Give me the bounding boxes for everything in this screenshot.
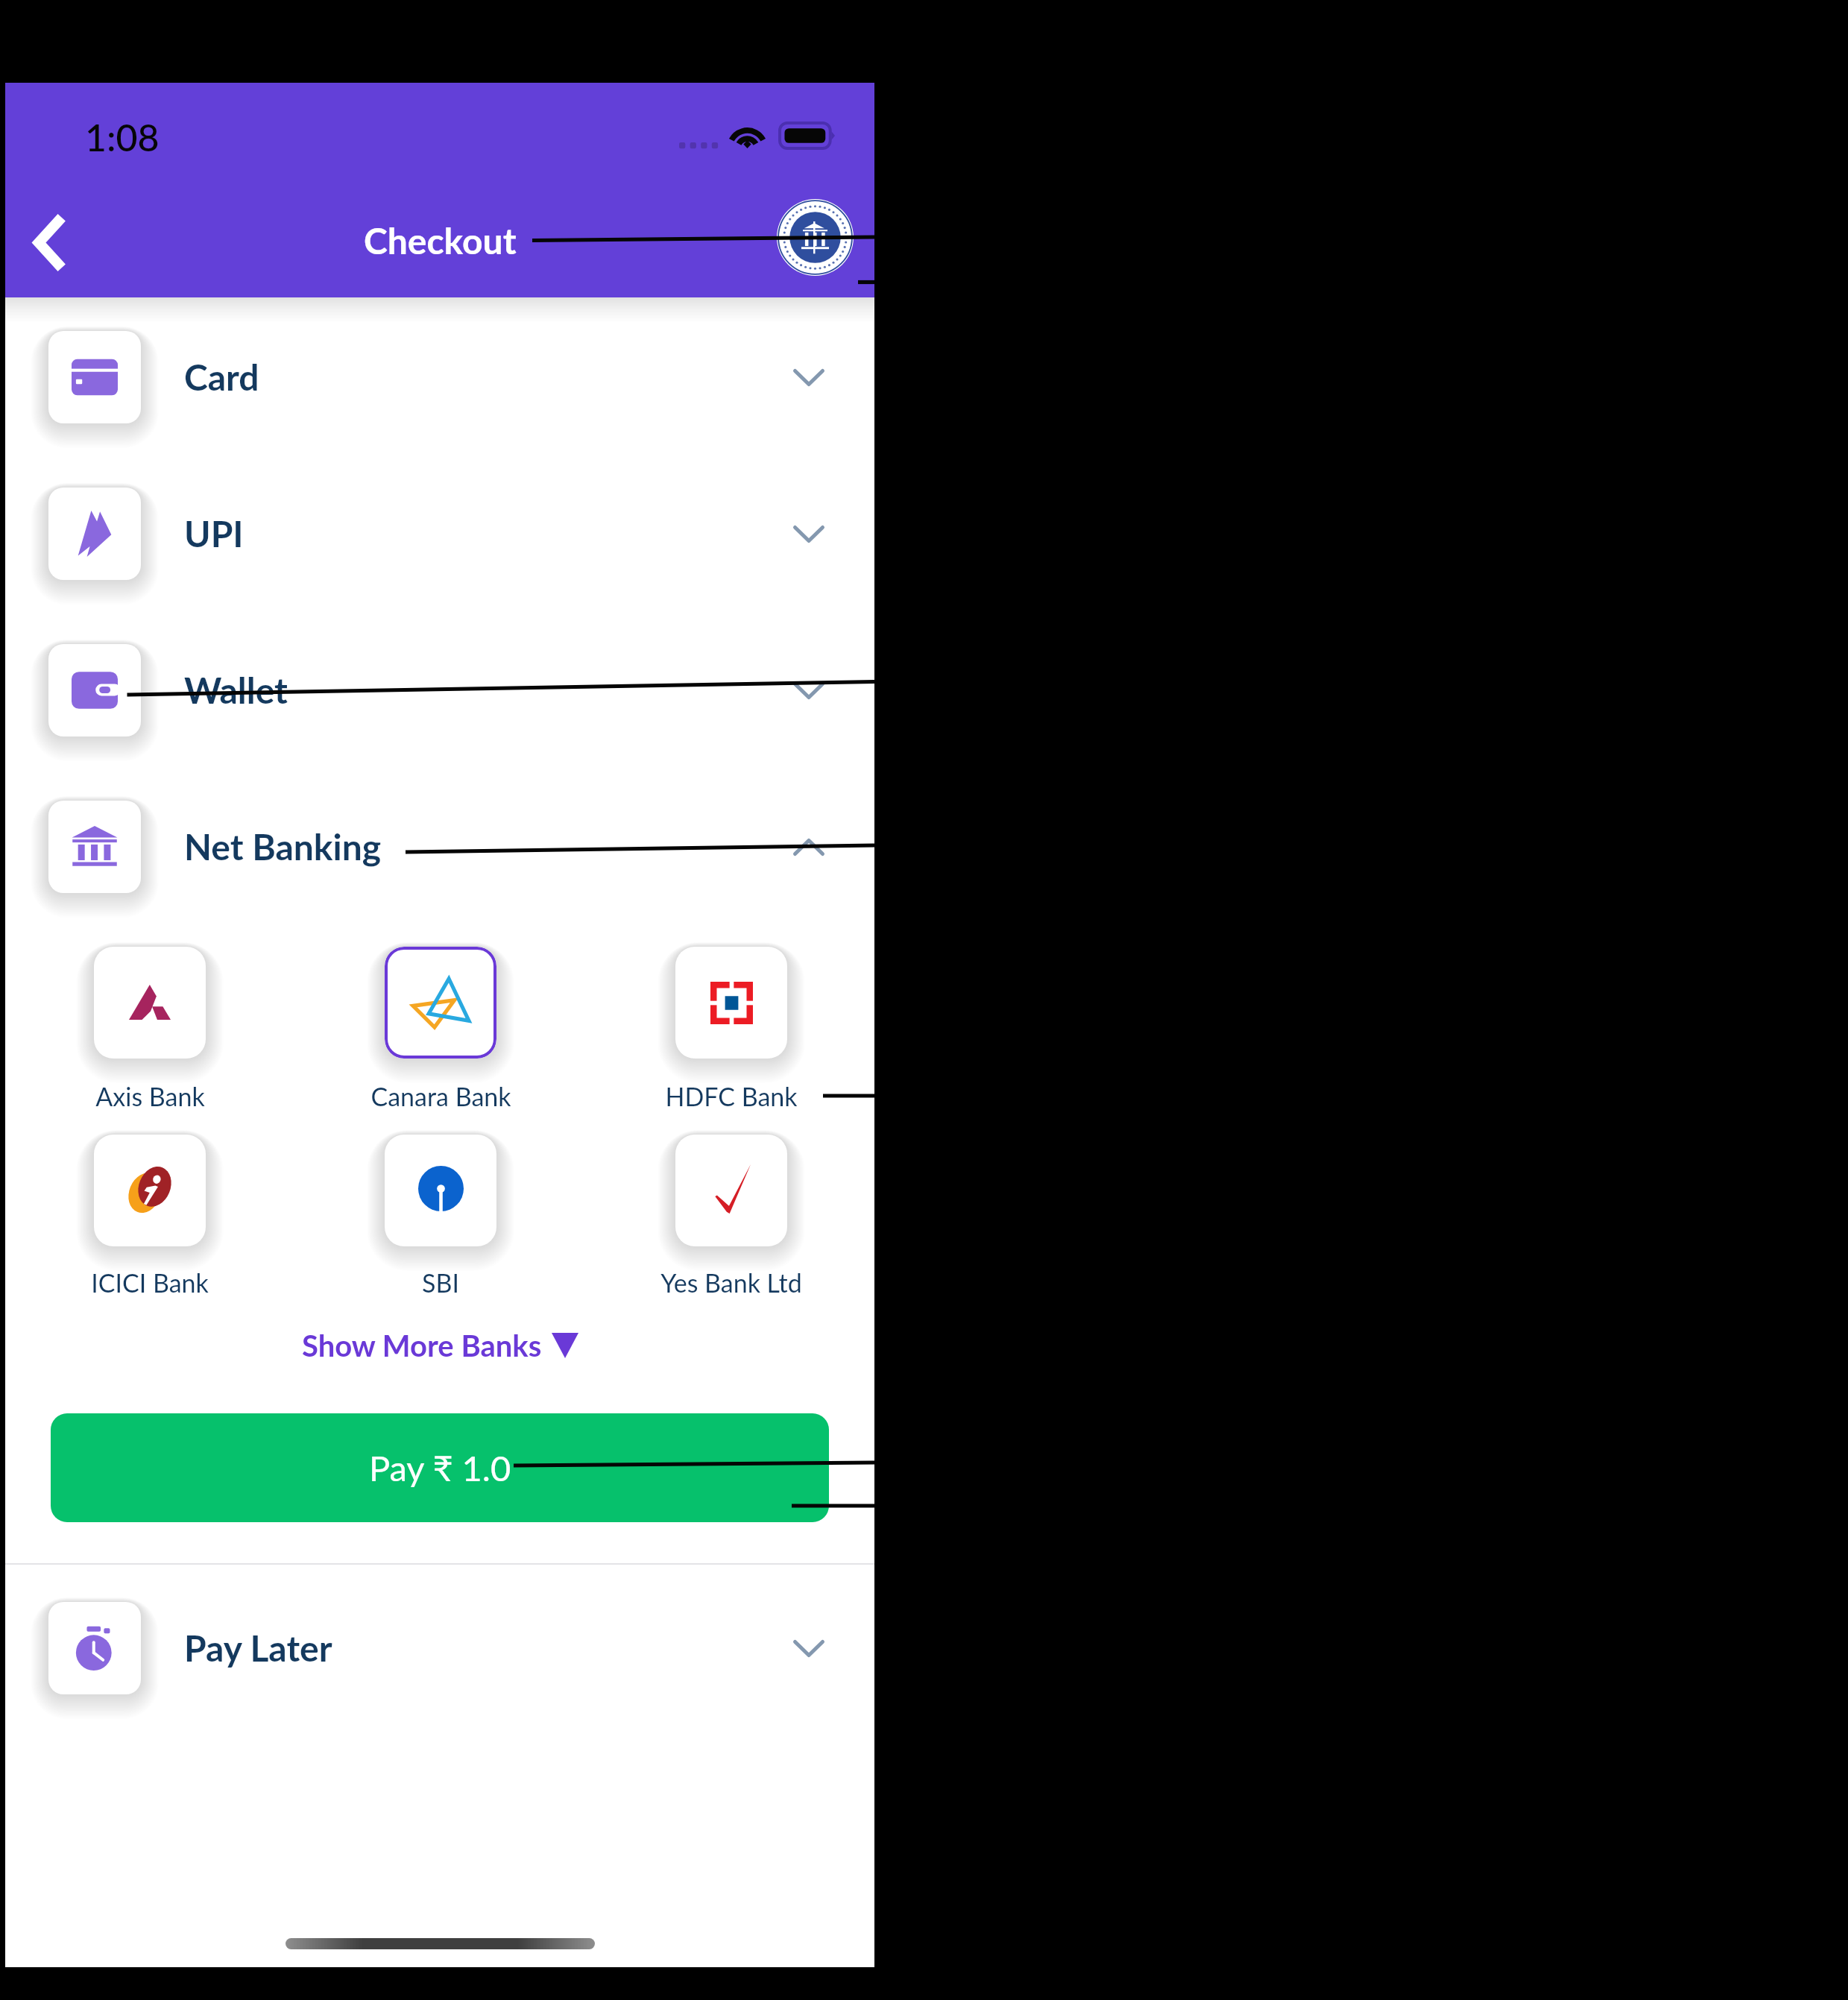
button[interactable]: UPI xyxy=(5,459,874,608)
staticText: Pay Later xyxy=(184,1627,332,1670)
button[interactable]: Back xyxy=(5,174,92,310)
button[interactable]: Pay ₹ 1.0 xyxy=(51,1413,829,1522)
staticText: Card xyxy=(184,356,259,399)
staticText: UPI xyxy=(184,512,244,555)
staticText: Axis Bank xyxy=(95,1081,205,1111)
button[interactable] xyxy=(638,939,824,1126)
staticText: Canara Bank xyxy=(370,1081,511,1111)
button[interactable] xyxy=(57,1127,243,1313)
staticText: Checkout xyxy=(364,219,517,262)
staticText: Wallet xyxy=(184,669,288,712)
button[interactable] xyxy=(638,1127,824,1313)
button[interactable]: Pay Later xyxy=(5,1574,874,1723)
button[interactable]: Wallet xyxy=(5,616,874,765)
staticText: ICICI Bank xyxy=(91,1267,209,1298)
button[interactable]: Show More Banks xyxy=(302,1328,578,1363)
button[interactable]: Card xyxy=(5,303,874,452)
button[interactable]: Net Banking xyxy=(5,772,874,921)
staticText: Net Banking xyxy=(184,825,382,868)
button[interactable] xyxy=(57,939,243,1126)
staticText: HDFC Bank xyxy=(665,1081,798,1111)
button[interactable] xyxy=(347,1127,534,1313)
staticText: Yes Bank Ltd xyxy=(660,1267,802,1298)
button[interactable] xyxy=(347,939,534,1126)
button[interactable]: Delhi Development Authority logo xyxy=(777,199,854,276)
staticText: Show More Banks xyxy=(302,1328,542,1363)
staticText: SBI xyxy=(422,1267,459,1298)
staticText: 1:08 xyxy=(85,115,160,160)
staticText: Pay ₹ 1.0 xyxy=(369,1447,511,1489)
